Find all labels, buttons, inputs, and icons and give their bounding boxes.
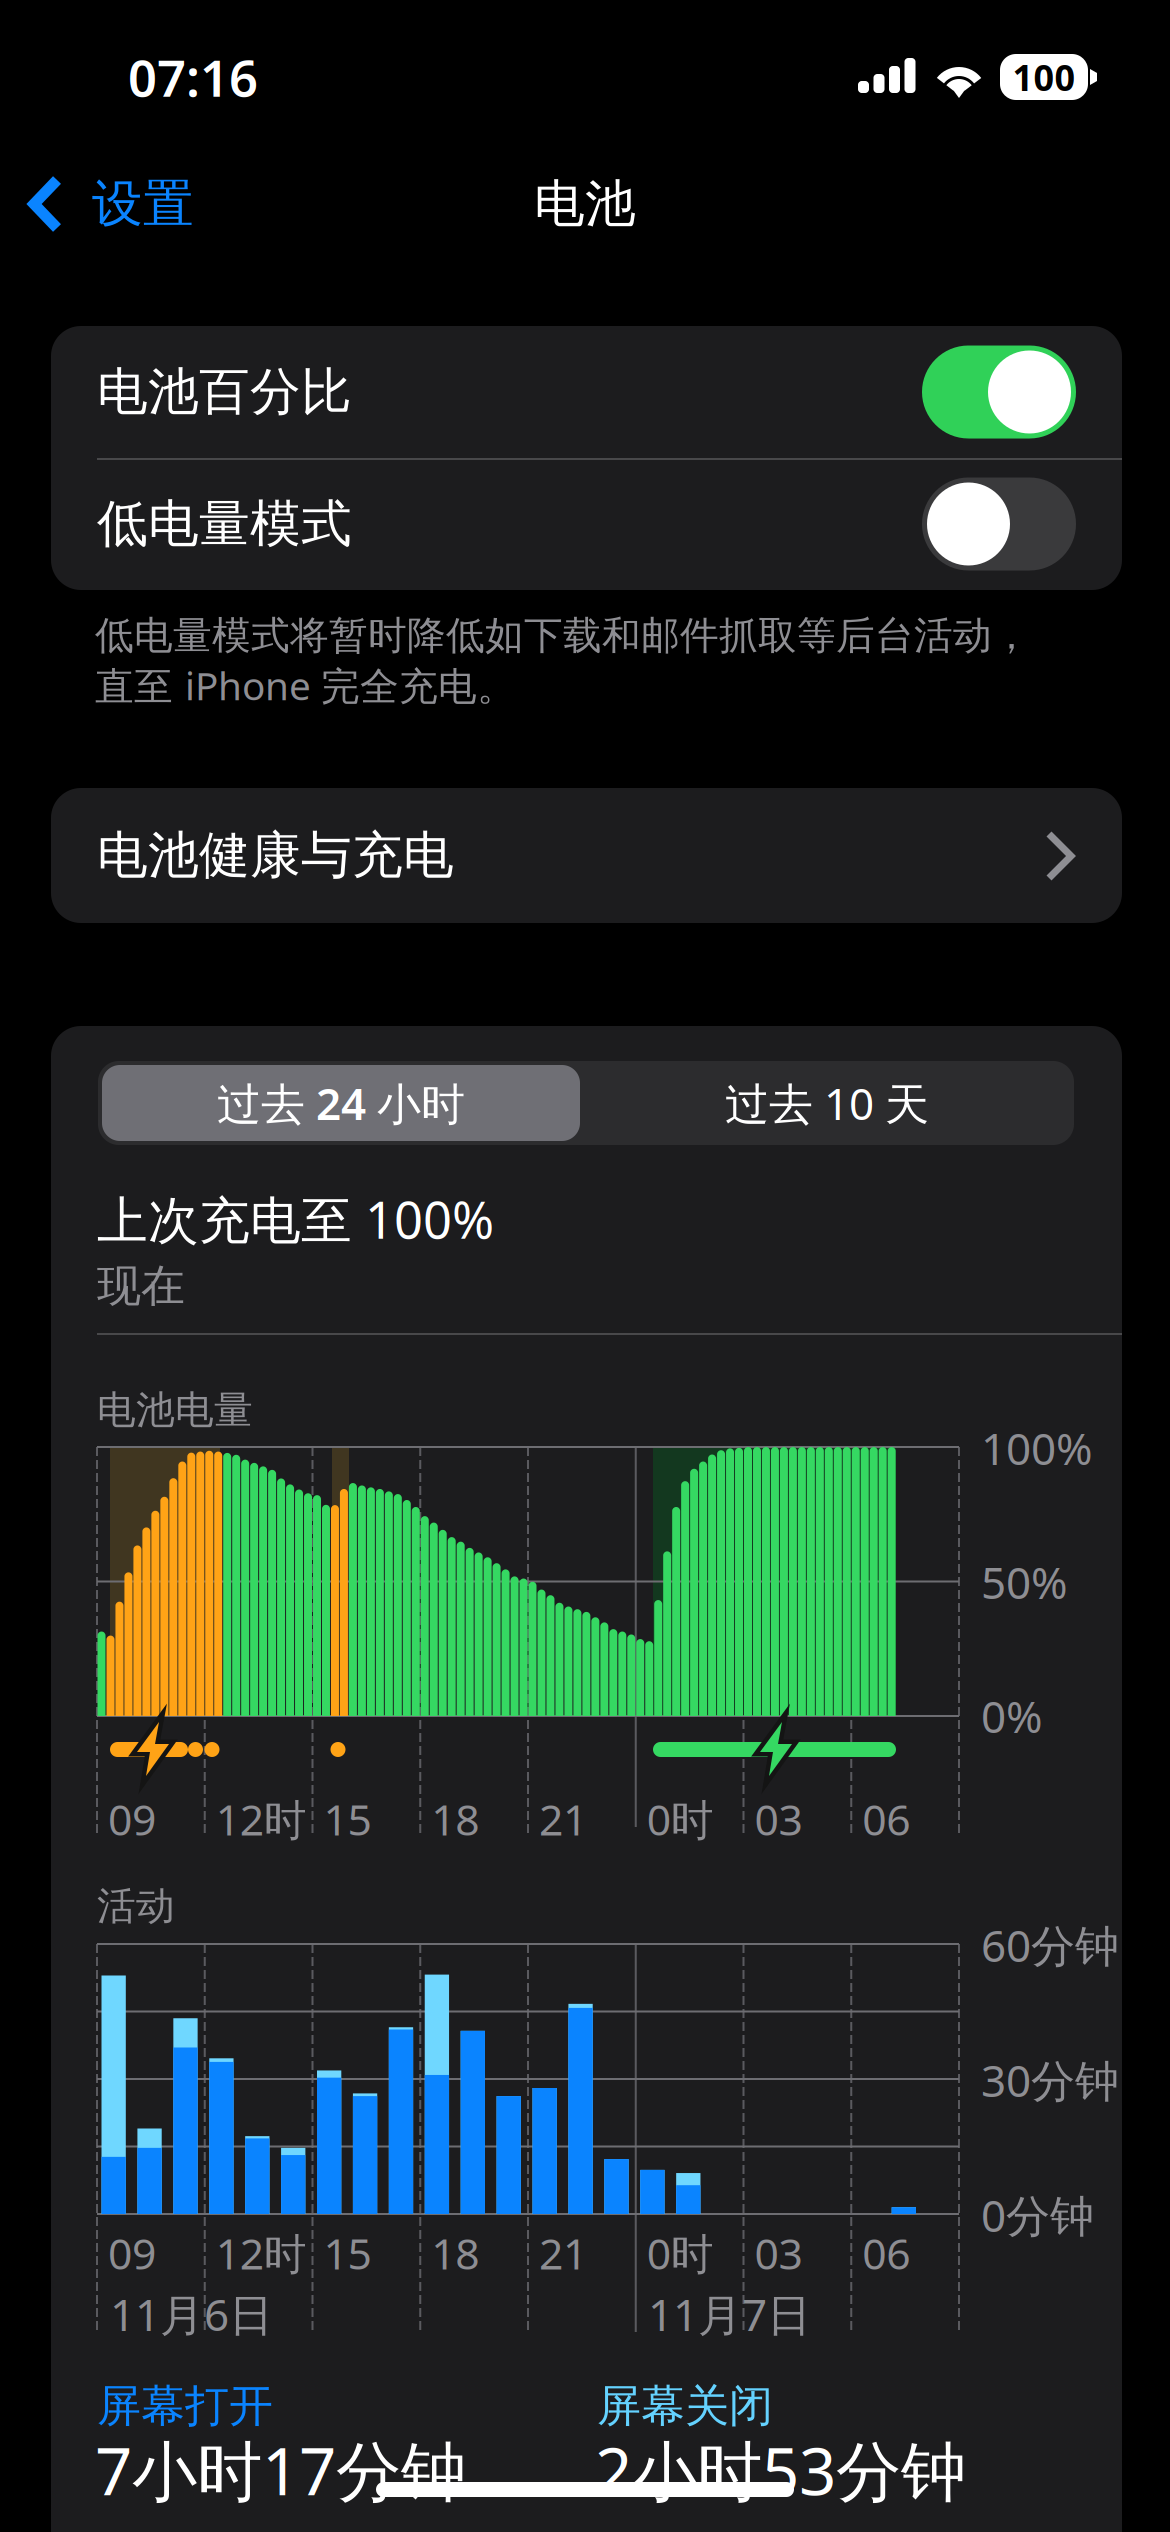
button[interactable]: 过去 24 小时 — [102, 1065, 580, 1141]
staticText: 11月7日 — [648, 2285, 811, 2343]
staticText: 15 — [323, 2225, 371, 2281]
staticText: 07:16 — [128, 43, 258, 111]
button[interactable]: 低电量模式 — [51, 458, 1122, 590]
staticText: 上次充电至 100% — [97, 1185, 494, 1253]
staticText: 15 — [323, 1791, 371, 1847]
staticText: 活动 — [97, 1882, 175, 1930]
staticText: 11月6日 — [110, 2285, 273, 2343]
staticText: 电池电量 — [97, 1386, 253, 1434]
staticText: 设置 — [92, 173, 194, 235]
staticText: 12时 — [216, 1791, 307, 1847]
staticText: 电池 — [534, 173, 636, 235]
staticText: 50% — [981, 1553, 1068, 1611]
staticText: 06 — [862, 2225, 910, 2281]
staticText: 屏幕关闭 — [597, 2379, 773, 2433]
staticText: 21 — [539, 1791, 587, 1847]
staticText: 过去 24 小时 — [217, 1074, 465, 1132]
staticText: 0时 — [647, 1791, 714, 1847]
staticText: 30分钟 — [981, 2051, 1119, 2109]
staticText: 2小时53分钟 — [595, 2427, 966, 2513]
staticText: 低电量模式 — [97, 493, 352, 555]
staticText: 过去 10 天 — [725, 1074, 929, 1132]
staticText: 0% — [981, 1687, 1043, 1745]
staticText: 18 — [431, 2225, 479, 2281]
staticText: 21 — [539, 2225, 587, 2281]
staticText: 60分钟 — [981, 1916, 1119, 1974]
staticText: 屏幕打开 — [97, 2379, 273, 2433]
staticText: 03 — [754, 2225, 802, 2281]
staticText: 03 — [754, 1791, 802, 1847]
staticText: 低电量模式将暂时降低如下载和邮件抓取等后台活动，直至 iPhone 完全充电。 — [95, 612, 1031, 711]
staticText: 0时 — [647, 2225, 714, 2281]
staticText: 7小时17分钟 — [95, 2427, 466, 2513]
staticText: 电池百分比 — [97, 361, 352, 423]
staticText: 06 — [862, 1791, 910, 1847]
staticText: 现在 — [97, 1259, 185, 1313]
staticText: 18 — [431, 1791, 479, 1847]
staticText: 09 — [108, 2225, 156, 2281]
staticText: 09 — [108, 1791, 156, 1847]
button[interactable]: 电池百分比 — [51, 326, 1122, 458]
staticText: 电池健康与充电 — [97, 824, 454, 887]
button[interactable]: 过去 10 天 — [584, 1065, 1070, 1141]
staticText: 12时 — [216, 2225, 307, 2281]
button[interactable]: 设置 — [0, 144, 224, 264]
staticText: 100 — [1012, 53, 1075, 101]
staticText: 0分钟 — [981, 2186, 1094, 2244]
staticText: 100% — [981, 1419, 1093, 1477]
button[interactable]: 电池健康与充电 — [51, 788, 1122, 923]
